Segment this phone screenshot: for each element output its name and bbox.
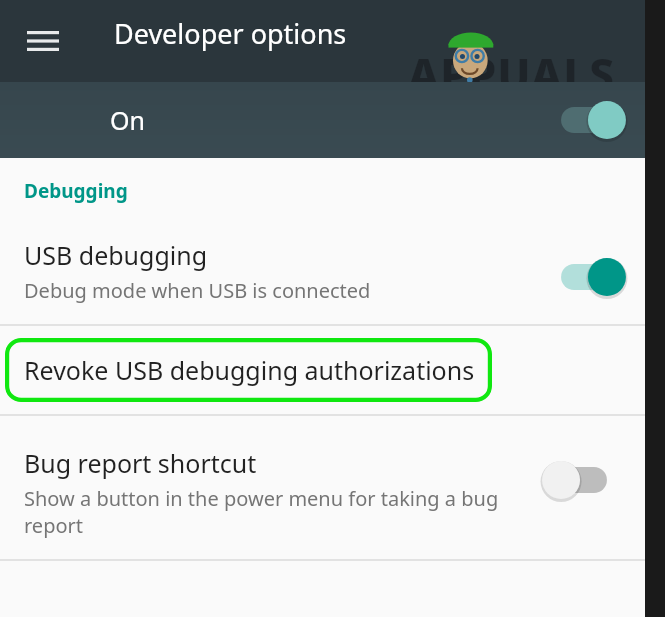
button[interactable]: Bug report shortcut bbox=[0, 416, 645, 540]
button[interactable]: On bbox=[0, 82, 645, 158]
staticText: Revoke USB debugging authorizations bbox=[24, 353, 475, 387]
staticText: APPUALS bbox=[408, 44, 616, 104]
staticText: Developer options bbox=[114, 15, 347, 52]
button[interactable]: Developer options on bbox=[548, 88, 620, 152]
button[interactable]: Revoke USB debugging authorizations bbox=[5, 338, 492, 402]
button[interactable]: Toggle bug report shortcut bbox=[548, 448, 620, 512]
staticText: Debug mode when USB is connected bbox=[24, 277, 371, 304]
staticText: Debugging bbox=[24, 178, 128, 204]
staticText: USB debugging bbox=[24, 238, 208, 272]
staticText: Bug report shortcut bbox=[24, 446, 257, 480]
button[interactable]: Toggle USB debugging bbox=[548, 245, 620, 309]
staticText: Show a button in the power menu for taki… bbox=[24, 485, 524, 539]
staticText: On bbox=[110, 103, 145, 137]
button[interactable]: USB debugging bbox=[0, 230, 645, 324]
button[interactable]: Open navigation menu bbox=[10, 8, 76, 74]
